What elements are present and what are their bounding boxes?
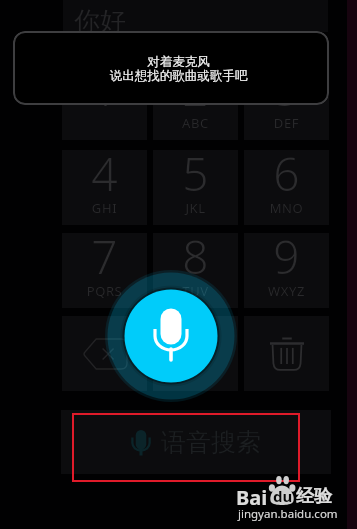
staticText: 经验 (296, 485, 332, 508)
button[interactable]: 9 (244, 233, 329, 308)
button[interactable]: 8 (153, 233, 238, 308)
staticText: 3 (244, 57, 329, 120)
staticText: 8 (153, 225, 238, 288)
staticText: JKL (153, 199, 238, 217)
button[interactable]: 1 (62, 65, 147, 140)
staticText: 7 (62, 225, 147, 288)
staticText: 2 (153, 57, 238, 120)
staticText: GHI (62, 199, 147, 217)
staticText: 9 (244, 225, 329, 288)
staticText: 5 (153, 142, 238, 205)
staticText: 语音搜索 (161, 427, 261, 458)
staticText: 对着麦克风 (0, 54, 357, 70)
staticText: 1 (62, 57, 147, 120)
staticText: 说出想找的歌曲或歌手吧 (0, 68, 357, 84)
staticText: PQRS (62, 282, 147, 300)
button[interactable]: 2 (153, 65, 238, 140)
staticText: 6 (244, 142, 329, 205)
button[interactable]: Clear (244, 316, 329, 391)
button[interactable]: 语音搜索 (61, 410, 331, 474)
button[interactable]: 5 (153, 150, 238, 225)
staticText: ABC (153, 114, 238, 132)
button[interactable]: 3 (244, 65, 329, 140)
staticText: 你好 (74, 5, 126, 38)
staticText: MNO (244, 199, 329, 217)
staticText: DEF (244, 114, 329, 132)
button[interactable]: Backspace (62, 316, 147, 391)
staticText: WXYZ (244, 282, 329, 300)
button[interactable] (153, 316, 238, 391)
staticText: Bai (236, 484, 268, 511)
staticText: du (273, 486, 293, 506)
button[interactable]: 6 (244, 150, 329, 225)
button[interactable]: 7 (62, 233, 147, 308)
staticText: jingyan.baidu.com (238, 506, 338, 522)
button[interactable]: 4 (62, 150, 147, 225)
button[interactable] (63, 0, 328, 32)
button[interactable]: Voice input (101, 266, 241, 406)
staticText: 4 (62, 142, 147, 205)
staticText: TUV (153, 282, 238, 300)
